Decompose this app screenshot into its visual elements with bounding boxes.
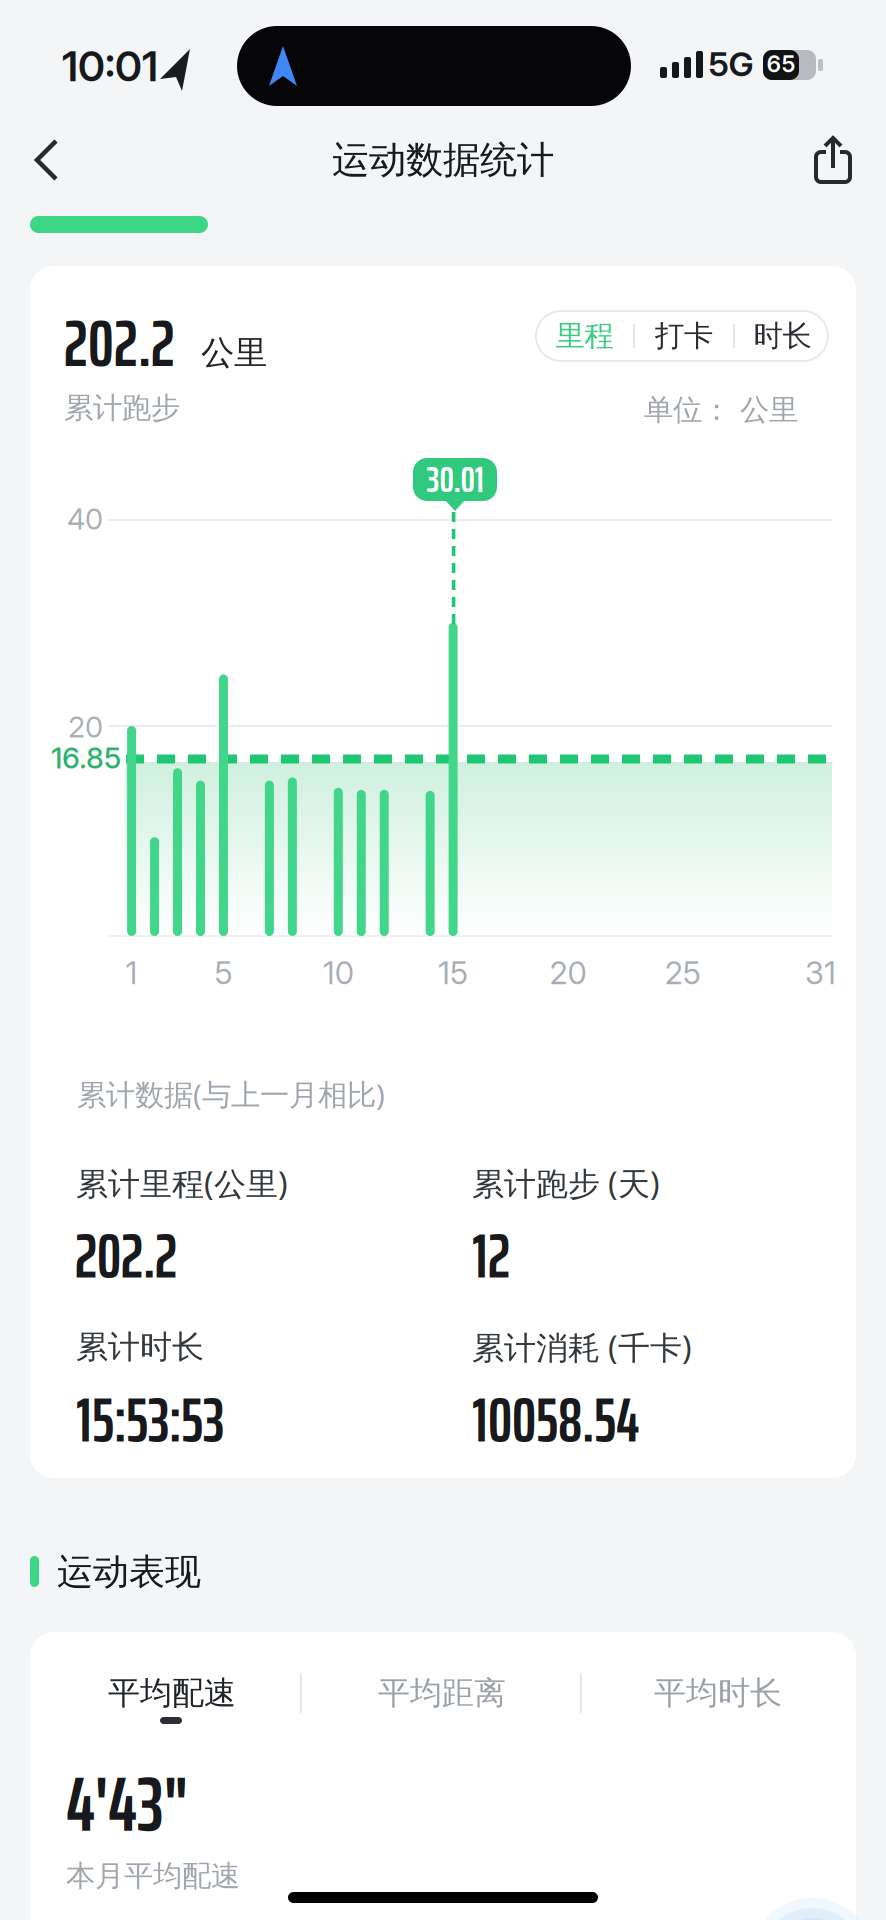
button[interactable]: Back: [30, 136, 74, 184]
button[interactable]: 打卡: [635, 311, 733, 361]
staticText: 里程: [555, 318, 613, 354]
staticText: 运动数据统计: [332, 137, 554, 183]
staticText: 累计跑步 (天): [472, 1162, 660, 1204]
staticText: 平均配速: [108, 1673, 236, 1713]
staticText: 15: [438, 954, 468, 992]
staticText: 单位： 公里: [644, 392, 798, 428]
button[interactable]: 时长: [735, 311, 830, 361]
staticText: 累计消耗 (千卡): [472, 1326, 692, 1368]
staticText: 65: [766, 50, 795, 78]
staticText: 30.01: [426, 450, 483, 508]
staticText: 打卡: [655, 318, 713, 354]
staticText: 10058.54: [472, 1371, 640, 1469]
button[interactable]: Share: [816, 136, 850, 184]
staticText: 15:53:53: [76, 1371, 224, 1469]
button[interactable]: 平均时长: [598, 1663, 838, 1723]
staticText: 12: [472, 1207, 510, 1305]
staticText: 累计时长: [76, 1327, 204, 1367]
staticText: 202.2: [75, 1207, 177, 1305]
staticText: 10: [323, 954, 354, 992]
staticText: 4'43": [66, 1743, 188, 1865]
staticText: 累计里程(公里): [76, 1162, 288, 1204]
button[interactable]: 里程: [536, 311, 633, 361]
staticText: 20: [68, 709, 103, 745]
staticText: 10:01: [62, 41, 158, 91]
staticText: 累计数据(与上一月相比): [77, 1074, 385, 1113]
staticText: 25: [665, 954, 701, 992]
staticText: 累计跑步: [64, 390, 180, 426]
staticText: 时长: [753, 318, 811, 354]
staticText: 5G: [708, 43, 753, 84]
staticText: 本月平均配速: [66, 1858, 240, 1894]
staticText: 16.85: [51, 740, 121, 776]
staticText: 20: [549, 954, 586, 992]
staticText: 1: [126, 954, 138, 992]
staticText: 公里: [201, 332, 267, 373]
staticText: 5: [214, 954, 232, 992]
staticText: 40: [67, 501, 103, 537]
staticText: 平均时长: [654, 1673, 782, 1713]
staticText: 202.2: [64, 291, 175, 395]
staticText: 运动表现: [57, 1550, 201, 1594]
staticText: 平均距离: [378, 1673, 506, 1713]
button[interactable]: 平均距离: [322, 1663, 562, 1723]
button[interactable]: 平均配速: [52, 1663, 292, 1723]
staticText: 31: [805, 954, 836, 992]
